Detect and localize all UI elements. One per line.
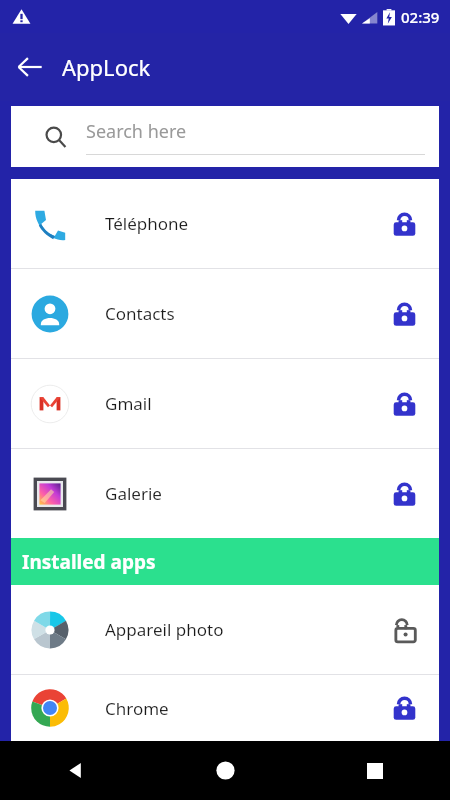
button[interactable]: Appareil photo xyxy=(11,585,439,674)
button[interactable]: Chrome xyxy=(11,675,439,741)
button[interactable]: Search xyxy=(11,106,439,167)
staticText: Search here xyxy=(86,119,187,144)
staticText: Chrome xyxy=(105,697,377,720)
staticText: Galerie xyxy=(105,482,377,505)
staticText: AppLock xyxy=(62,52,151,82)
button[interactable]: Home xyxy=(150,741,300,800)
button[interactable]: Locked xyxy=(377,287,431,341)
button[interactable]: Contacts xyxy=(11,269,439,358)
button[interactable]: Back xyxy=(0,741,150,800)
button[interactable]: Locked xyxy=(377,681,431,735)
staticText: 02:39 xyxy=(401,7,440,27)
button[interactable]: Locked xyxy=(377,467,431,521)
button[interactable]: Téléphone xyxy=(11,179,439,268)
other: Search xyxy=(45,126,67,148)
button[interactable]: Galerie xyxy=(11,449,439,538)
button[interactable]: Unlocked xyxy=(377,603,431,657)
staticText: Appareil photo xyxy=(105,618,377,641)
button[interactable]: Back xyxy=(6,43,54,91)
button[interactable]: Locked xyxy=(377,197,431,251)
staticText: Installed apps xyxy=(22,549,156,575)
button[interactable]: Gmail xyxy=(11,359,439,448)
staticText: Gmail xyxy=(105,392,377,415)
button[interactable]: Locked xyxy=(377,377,431,431)
button[interactable]: Recent apps xyxy=(300,741,450,800)
staticText: Téléphone xyxy=(105,212,377,235)
staticText: Contacts xyxy=(105,302,377,325)
